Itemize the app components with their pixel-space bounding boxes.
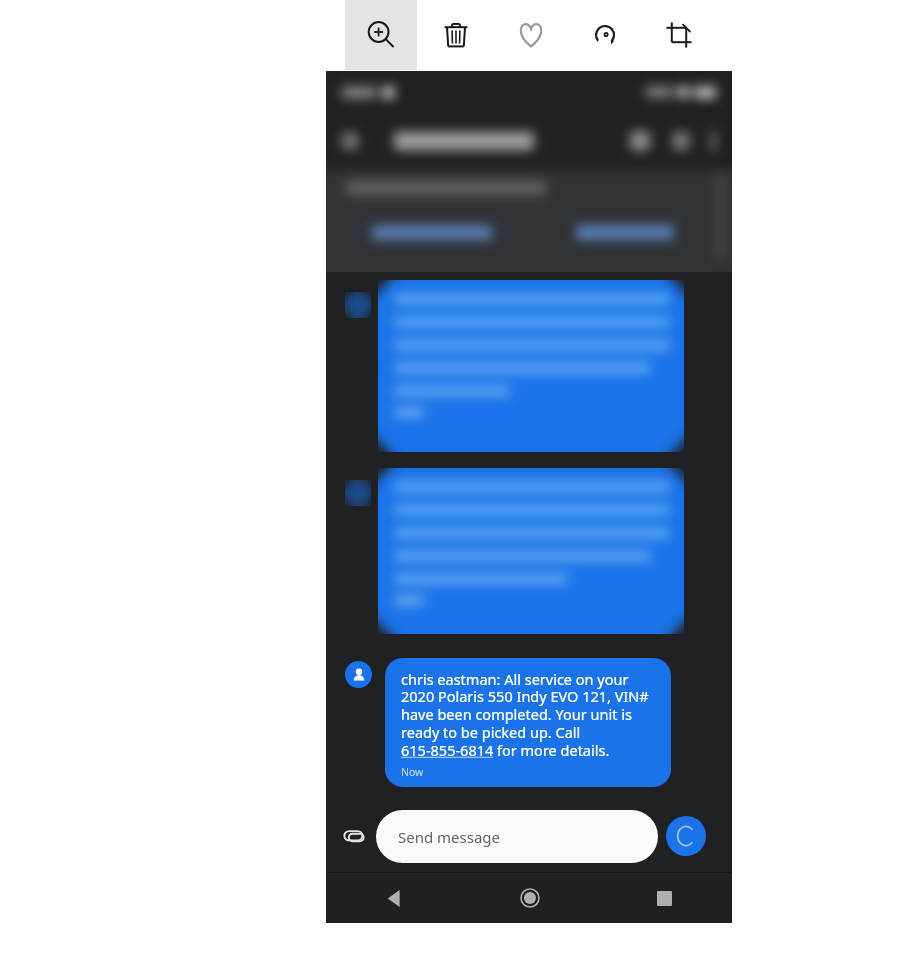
button[interactable]: Send message: [376, 810, 658, 863]
button[interactable]: Delete: [429, 8, 483, 62]
button[interactable]: Favorite: [504, 8, 558, 62]
button[interactable]: Crop: [652, 8, 706, 62]
button[interactable]: Attach file: [332, 814, 376, 858]
staticText: Send message: [398, 827, 501, 847]
button[interactable]: Send: [666, 816, 706, 856]
button[interactable]: chris eastman: All service on your 2020 …: [345, 658, 671, 787]
staticText: Now: [401, 765, 424, 779]
button[interactable]: Zoom: [345, 0, 417, 70]
staticText: chris eastman: All service on your 2020 …: [401, 669, 657, 760]
button[interactable]: Rotate: [578, 8, 632, 62]
button[interactable]: Back: [326, 873, 462, 923]
button[interactable]: Recent apps: [597, 873, 732, 923]
button[interactable]: Home: [462, 873, 597, 923]
